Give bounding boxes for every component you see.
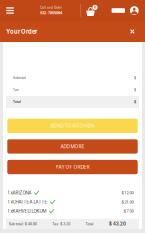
staticText: SEND TO KITCHEN bbox=[50, 123, 94, 129]
staticText: $ bbox=[134, 88, 136, 92]
staticText: $ 21.00 bbox=[121, 200, 133, 204]
staticText: $ bbox=[134, 76, 136, 80]
staticText: 0 bbox=[94, 5, 96, 9]
button[interactable]: Account bbox=[130, 6, 145, 15]
staticText: Tax: $ 3.20 bbox=[52, 222, 70, 226]
staticText: 1 xKAHVELI LOKUM bbox=[8, 208, 47, 214]
staticText: Call and Order bbox=[40, 6, 62, 9]
staticText: 1 xCHAI TEA LATTE bbox=[8, 199, 48, 205]
button[interactable]: PAY OF ORDER bbox=[7, 160, 138, 174]
staticText: $ 12.00 bbox=[121, 190, 133, 195]
staticText: $ 7.00 bbox=[123, 209, 133, 214]
staticText: ADD MORE bbox=[60, 143, 84, 149]
button[interactable]: Language bbox=[112, 0, 130, 21]
button[interactable]: Cart bbox=[84, 5, 104, 16]
staticText: Sub total: $ 40.00 bbox=[9, 222, 37, 226]
staticText: Your Order bbox=[6, 28, 37, 35]
staticText: PAY OF ORDER bbox=[55, 164, 89, 170]
staticText: Tax bbox=[13, 88, 19, 92]
button[interactable]: Close bbox=[126, 24, 138, 39]
staticText: 1 xARIZONA bbox=[8, 190, 32, 195]
staticText: Subtotal bbox=[13, 76, 26, 80]
staticText: Total bbox=[86, 222, 94, 226]
button[interactable]: SEND TO KITCHEN bbox=[7, 119, 138, 133]
button[interactable]: Menu bbox=[0, 0, 20, 21]
staticText: Total bbox=[13, 100, 21, 104]
button[interactable]: ADD MORE bbox=[7, 139, 138, 154]
staticText: $ 43.20 bbox=[109, 221, 126, 227]
staticText: 532-7855094 bbox=[40, 11, 62, 15]
staticText: $ bbox=[134, 100, 136, 104]
